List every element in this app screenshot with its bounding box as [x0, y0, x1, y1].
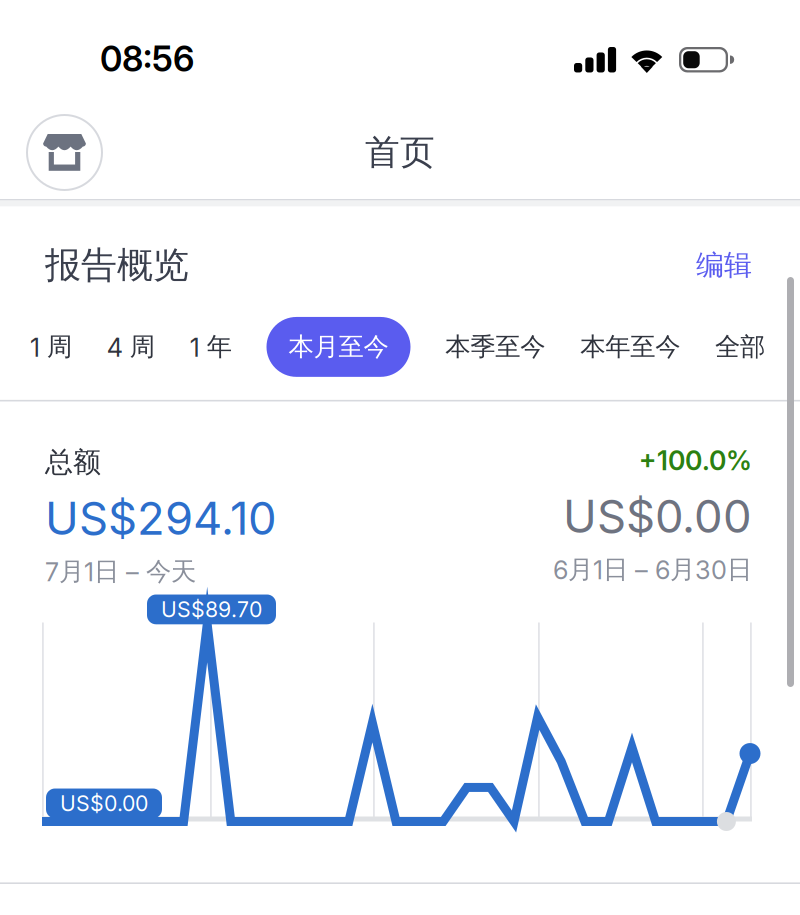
button[interactable]: 本月至今 [266, 317, 410, 377]
staticText: US$0.00 [563, 489, 752, 544]
staticText: 08:56 [100, 38, 194, 80]
button[interactable]: 本年至今 [580, 317, 680, 377]
staticText: 首页 [365, 131, 435, 174]
staticText: US$89.70 [161, 596, 262, 622]
staticText: 1 周 [30, 331, 72, 363]
staticText: 1 年 [190, 331, 232, 363]
staticText: 总额 [45, 444, 101, 480]
staticText: 4 周 [107, 331, 155, 363]
staticText: 全部 [715, 331, 765, 363]
button[interactable]: 4 周 [107, 317, 155, 377]
button[interactable]: 全部 [715, 317, 765, 377]
staticText: US$294.10 [45, 491, 277, 546]
button[interactable]: 编辑 [696, 248, 752, 283]
button[interactable]: Store [0, 106, 116, 199]
staticText: 本年至今 [580, 331, 680, 363]
staticText: +100.0% [639, 444, 752, 477]
button[interactable]: 1 周 [30, 317, 72, 377]
button[interactable]: 本季至今 [445, 317, 545, 377]
staticText: US$0.00 [60, 790, 148, 816]
staticText: 7月1日 – 今天 [45, 556, 196, 587]
staticText: 编辑 [696, 248, 752, 283]
staticText: 6月1日 – 6月30日 [553, 554, 752, 585]
staticText: 本月至今 [288, 331, 388, 363]
staticText: 本季至今 [445, 331, 545, 363]
staticText: 报告概览 [45, 243, 189, 288]
button[interactable]: 1 年 [190, 317, 232, 377]
